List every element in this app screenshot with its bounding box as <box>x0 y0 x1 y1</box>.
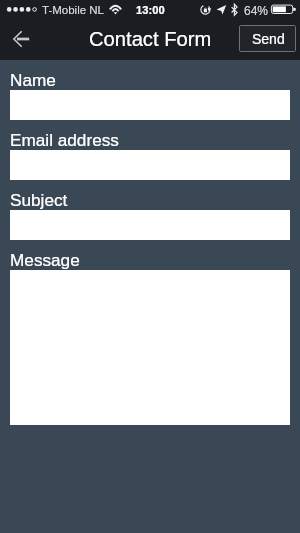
staticText: Subject <box>10 190 68 209</box>
staticText: Message <box>10 250 80 269</box>
button[interactable]: Send <box>239 25 296 52</box>
staticText: Send <box>252 31 285 47</box>
staticText: T-Mobile NL <box>42 4 104 17</box>
staticText: 64% <box>244 4 269 17</box>
staticText: Email address <box>10 130 119 149</box>
button[interactable]: Back <box>0 20 44 60</box>
staticText: Contact Form <box>89 28 212 51</box>
staticText: Name <box>10 70 56 89</box>
staticText: 13:00 <box>136 4 165 17</box>
